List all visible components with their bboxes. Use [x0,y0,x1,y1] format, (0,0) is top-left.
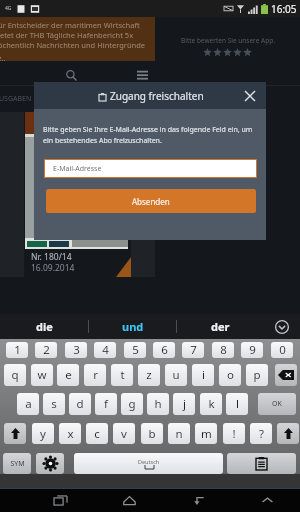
staticText: 1 [14,342,21,358]
staticText: Deutsch [138,458,160,465]
button[interactable]: ür Entscheider der maritimen Wirtschaft [0,17,155,61]
button[interactable]: Umschalt [277,423,299,444]
staticText: x [67,426,74,442]
staticText: o [227,367,234,383]
button[interactable]: g [121,393,143,415]
staticText: Bitte geben Sie Ihre E-Mail-Adresse in d… [43,125,258,145]
button[interactable]: E-Mail-Adresse [45,160,256,177]
button[interactable]: 0 [271,342,293,358]
staticText: i [202,367,205,383]
staticText: OK [272,399,282,409]
staticText: y [40,426,46,442]
staticText: 4 [102,342,109,358]
staticText: h [154,396,162,412]
staticText: 2 [43,342,50,358]
button[interactable]: OK [258,393,296,415]
button[interactable]: Weitere Vorschläge [264,314,300,339]
button[interactable]: Schließen [234,82,266,109]
staticText: g [128,396,136,412]
button[interactable]: Deutsch [74,453,223,474]
staticText: j [183,396,186,412]
button[interactable]: t [111,364,133,386]
button[interactable]: 4 [94,342,116,358]
button[interactable]: w [31,364,53,386]
staticText: ? [259,426,264,442]
button[interactable]: Startseite [112,489,146,512]
button[interactable]: s [43,393,65,415]
button[interactable]: Zwischenablage [227,453,296,474]
staticText: f [104,396,108,412]
button[interactable]: SYM [3,453,31,474]
button[interactable]: z [138,364,160,386]
button[interactable]: Suche [60,64,82,86]
button[interactable]: Löschen [275,364,297,386]
button[interactable]: 1 [6,342,28,358]
staticText: c [94,426,100,442]
button[interactable]: Einstellungen [36,453,64,474]
button[interactable]: o [219,364,241,386]
button[interactable]: 7 [182,342,204,358]
button[interactable]: und [89,314,176,339]
button[interactable]: q [4,364,26,386]
staticText: 3 [73,342,80,358]
staticText: e [65,367,72,383]
button[interactable]: k [200,393,222,415]
button[interactable]: der [177,314,264,339]
button[interactable]: Umschalt [4,423,26,444]
button[interactable]: die [0,314,88,339]
staticText: m [201,426,212,442]
staticText: k [208,396,215,412]
button[interactable]: m [195,423,217,444]
button[interactable]: 6 [153,342,175,358]
button[interactable]: n [168,423,190,444]
staticText: 6 [161,342,168,358]
button[interactable]: b [141,423,163,444]
staticText: E-Mail-Adresse [53,164,102,174]
button[interactable]: 9 [241,342,263,358]
button[interactable]: ! [223,423,245,444]
button[interactable]: x [59,423,81,444]
staticText: 16.09.2014 [31,262,75,274]
button[interactable]: f [95,393,117,415]
button[interactable]: Zurück [181,489,215,512]
button[interactable]: l [226,393,248,415]
button[interactable]: c [86,423,108,444]
button[interactable]: Letzte Apps [43,489,77,512]
button[interactable]: a [17,393,39,415]
button[interactable]: 3 [65,342,87,358]
staticText: w [37,367,47,383]
staticText: u [172,367,180,383]
button[interactable]: p [246,364,268,386]
button[interactable]: h [147,393,169,415]
button[interactable]: e [57,364,79,386]
staticText: n [175,426,183,442]
button[interactable]: 2 [35,342,57,358]
staticText: Nr. 180/14 [31,251,72,263]
staticText: Absenden [132,196,170,207]
button[interactable]: ? [250,423,272,444]
button[interactable]: i [192,364,214,386]
staticText: d [76,396,84,412]
staticText: 7 [190,342,197,358]
button[interactable]: u [165,364,187,386]
button[interactable]: r [84,364,106,386]
button[interactable]: 5 [124,342,146,358]
button[interactable]: Nr. 180/14 [0,112,155,277]
staticText: USGABEN [0,94,32,104]
button[interactable]: Absenden [46,189,256,213]
staticText: b [148,426,156,442]
button[interactable]: v [113,423,135,444]
button[interactable]: Nach oben [250,489,284,512]
button[interactable]: d [69,393,91,415]
staticText: 8 [220,342,227,358]
staticText: a [25,396,32,412]
staticText: öchentlich Nachrichten und Hintergründe … [0,40,153,63]
staticText: 4G [5,5,12,12]
button[interactable]: 8 [212,342,234,358]
button[interactable]: y [32,423,54,444]
staticText: r [93,367,98,383]
staticText: z [146,367,152,383]
staticText: q [11,367,19,383]
button[interactable]: Menü [131,64,153,86]
button[interactable]: j [173,393,195,415]
